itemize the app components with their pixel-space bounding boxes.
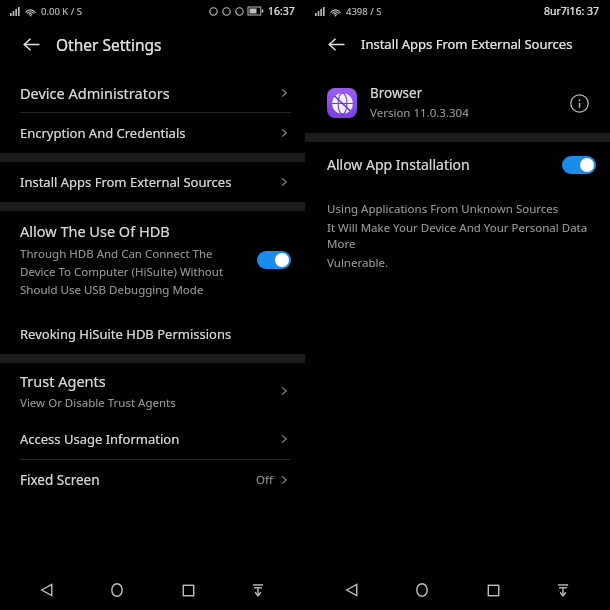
- staticText: It Will Make Your Device And Your Person…: [327, 220, 594, 252]
- staticText: Should Use USB Debugging Mode: [20, 282, 204, 298]
- button[interactable]: Access Usage Information: [0, 419, 305, 459]
- button[interactable]: Home: [399, 572, 445, 608]
- button[interactable]: Hide navigation bar: [540, 572, 586, 608]
- button[interactable]: Recents: [470, 572, 516, 608]
- button[interactable]: Toggle on: [562, 156, 596, 174]
- button[interactable]: Back: [329, 572, 375, 608]
- button[interactable]: Device Administrators: [0, 74, 305, 112]
- button[interactable]: Allow App Installation: [305, 142, 610, 187]
- button[interactable]: Trust Agents: [0, 363, 305, 419]
- staticText: Version 11.0.3.304: [370, 105, 469, 121]
- button[interactable]: App info: [564, 88, 594, 118]
- button[interactable]: Install Apps From External Sources: [0, 162, 305, 202]
- button[interactable]: Encryption And Credentials: [0, 113, 305, 153]
- staticText: Through HDB And Can Connect The: [20, 246, 213, 262]
- staticText: Browser: [370, 84, 423, 102]
- staticText: Other Settings: [56, 34, 162, 55]
- staticText: Access Usage Information: [20, 430, 180, 448]
- button[interactable]: Revoking HiSuite HDB Permissions: [0, 314, 305, 354]
- staticText: 0.00 K / S: [41, 5, 82, 18]
- staticText: Vulnerable.: [327, 255, 389, 271]
- staticText: Allow The Use Of HDB: [20, 221, 170, 241]
- staticText: Install Apps From External Sources: [361, 35, 573, 53]
- button[interactable]: Toggle on: [257, 251, 291, 269]
- staticText: Install Apps From External Sources: [20, 173, 232, 191]
- staticText: 16:37: [268, 4, 295, 18]
- staticText: 4398 / S: [346, 5, 382, 18]
- staticText: View Or Disable Trust Agents: [20, 395, 176, 411]
- button[interactable]: Allow The Use Of HDB: [0, 211, 305, 304]
- staticText: Trust Agents: [20, 371, 106, 391]
- staticText: Fixed Screen: [20, 471, 100, 489]
- staticText: Encryption And Credentials: [20, 124, 186, 142]
- staticText: Revoking HiSuite HDB Permissions: [20, 325, 232, 343]
- button[interactable]: Back: [14, 27, 48, 61]
- staticText: Device Administrators: [20, 83, 170, 103]
- button[interactable]: Back: [319, 27, 353, 61]
- button[interactable]: Hide navigation bar: [235, 572, 281, 608]
- button[interactable]: Back: [24, 572, 70, 608]
- staticText: Allow App Installation: [327, 155, 470, 174]
- staticText: 8ur7i16: 37: [544, 4, 600, 18]
- button[interactable]: Home: [94, 572, 140, 608]
- staticText: Off: [256, 472, 273, 488]
- staticText: Using Applications From Unknown Sources: [327, 201, 559, 217]
- button[interactable]: Browser: [305, 78, 610, 127]
- staticText: Device To Computer (HiSuite) Without: [20, 264, 224, 280]
- button[interactable]: Recents: [165, 572, 211, 608]
- button[interactable]: Fixed Screen: [0, 460, 305, 500]
